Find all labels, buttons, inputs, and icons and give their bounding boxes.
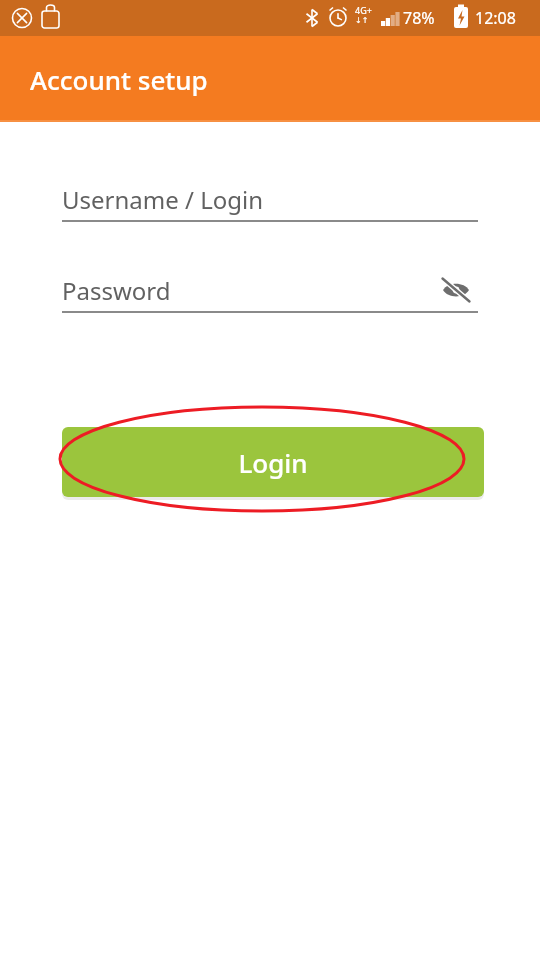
staticText: 12:08 <box>475 7 516 29</box>
staticText: Account setup <box>30 62 208 97</box>
staticText: 78% <box>403 7 435 29</box>
staticText: Login <box>238 445 308 480</box>
button[interactable]: Username / Login <box>62 178 478 220</box>
button[interactable]: Password <box>62 269 478 311</box>
staticText: ↓↑ <box>355 16 369 25</box>
button[interactable]: Show password <box>434 269 478 311</box>
staticText: 4G+ <box>355 4 372 16</box>
button[interactable]: Login <box>62 427 484 497</box>
staticText: Username / Login <box>62 183 264 216</box>
staticText: Password <box>62 274 171 307</box>
